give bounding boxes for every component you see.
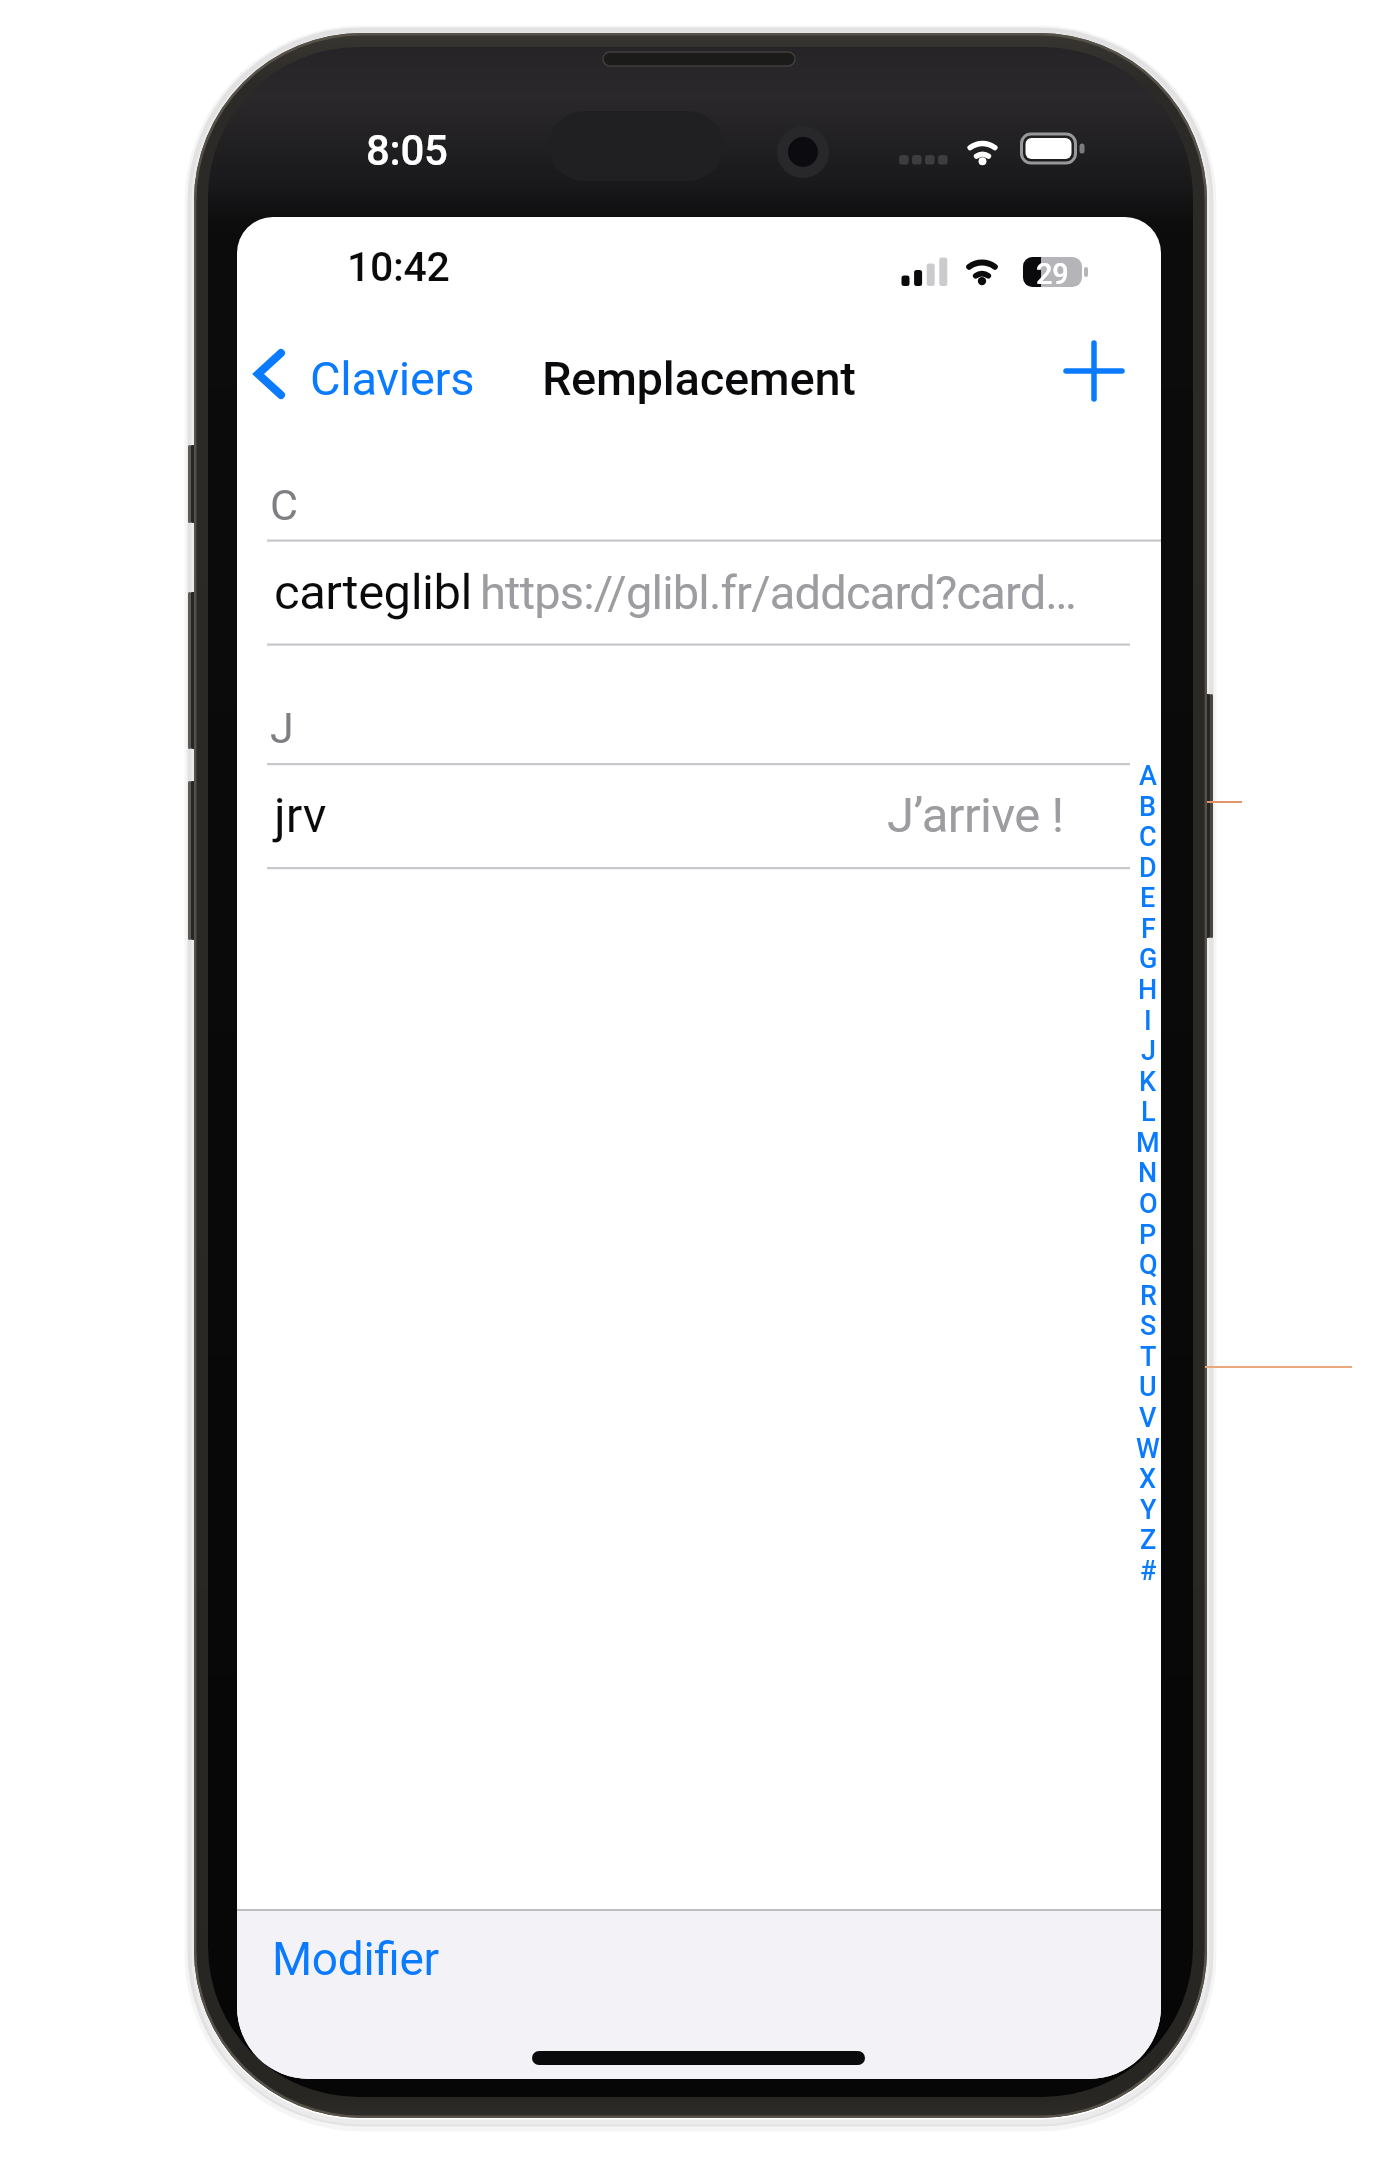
button[interactable]: carteglibl xyxy=(237,541,1161,644)
staticText: U xyxy=(1139,1371,1157,1401)
button[interactable]: Claviers xyxy=(243,337,479,411)
staticText: J xyxy=(270,703,294,753)
staticText: # xyxy=(1140,1555,1157,1585)
staticText: V xyxy=(1139,1402,1157,1432)
staticText: carteglibl xyxy=(274,564,472,621)
button[interactable]: jrv xyxy=(237,764,1161,867)
staticText: J’arrive ! xyxy=(887,787,1064,844)
staticText: 29 xyxy=(1036,257,1069,291)
staticText: Y xyxy=(1140,1494,1157,1524)
staticText: P xyxy=(1139,1219,1157,1249)
staticText: C xyxy=(1139,821,1157,851)
button[interactable] xyxy=(1060,336,1130,406)
staticText: B xyxy=(1139,791,1157,821)
staticText: K xyxy=(1139,1066,1157,1096)
staticText: R xyxy=(1140,1280,1157,1310)
staticText: D xyxy=(1139,852,1157,882)
button[interactable]: A xyxy=(1130,760,1161,1585)
staticText: 8:05 xyxy=(366,126,448,175)
staticText: Q xyxy=(1139,1249,1158,1279)
staticText: G xyxy=(1139,943,1158,973)
staticText: H xyxy=(1138,974,1158,1004)
staticText: Modifier xyxy=(272,1932,439,1986)
staticText: Claviers xyxy=(310,351,475,406)
staticText: 10:42 xyxy=(347,243,450,291)
staticText: E xyxy=(1140,882,1156,912)
staticText: S xyxy=(1140,1310,1157,1340)
staticText: T xyxy=(1140,1341,1157,1371)
button[interactable]: Modifier xyxy=(237,1911,517,2001)
staticText: F xyxy=(1141,913,1156,943)
staticText: L xyxy=(1141,1096,1156,1126)
staticText: C xyxy=(270,480,298,530)
staticText: J xyxy=(1141,1035,1156,1065)
staticText: https://glibl.fr/addcard?card… xyxy=(480,565,1076,620)
staticText: M xyxy=(1136,1127,1160,1157)
staticText: Remplacement xyxy=(542,351,856,406)
staticText: N xyxy=(1138,1157,1158,1187)
staticText: X xyxy=(1139,1463,1157,1493)
staticText: W xyxy=(1136,1433,1160,1463)
staticText: Z xyxy=(1140,1524,1157,1554)
staticText: jrv xyxy=(274,787,327,844)
staticText: I xyxy=(1144,1005,1152,1035)
staticText: A xyxy=(1139,760,1157,790)
staticText: O xyxy=(1139,1188,1158,1218)
